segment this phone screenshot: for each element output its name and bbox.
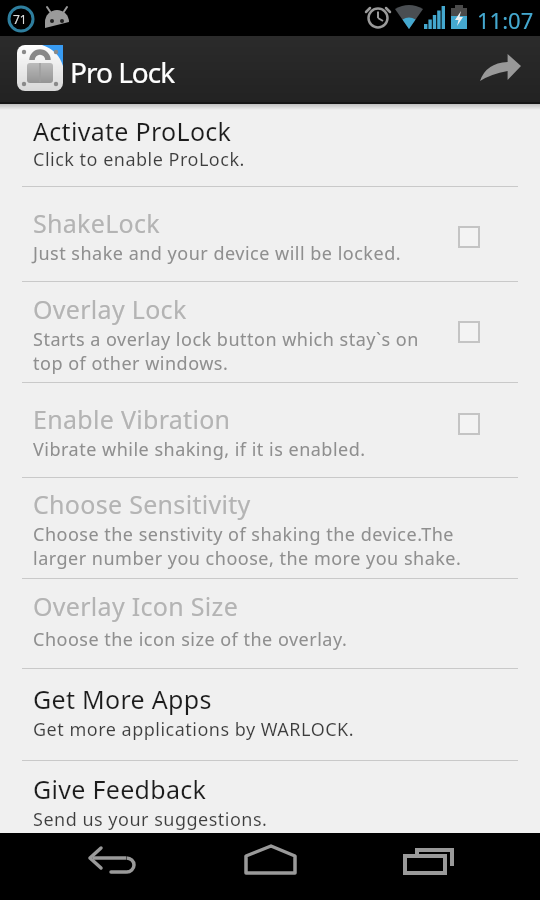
button[interactable] [398, 843, 458, 889]
staticText: Just shake and your device will be locke… [33, 241, 402, 266]
staticText: Choose the icon size of the overlay. [33, 627, 348, 652]
staticText: 11:07 [477, 5, 534, 35]
staticText: Enable Vibration [33, 402, 231, 436]
staticText: Overlay Icon Size [33, 589, 239, 623]
staticText: Get More Apps [33, 682, 212, 716]
staticText: Pro Lock [70, 53, 175, 91]
button[interactable] [0, 186, 540, 281]
button[interactable] [476, 48, 532, 88]
staticText: larger number you choose, the more you s… [33, 546, 462, 571]
button[interactable] [240, 843, 300, 889]
staticText: Starts a overlay lock button which stay`… [33, 327, 419, 352]
button[interactable] [0, 578, 540, 668]
staticText: Get more applications by WARLOCK. [33, 717, 355, 742]
staticText: Send us your suggestions. [33, 807, 268, 832]
staticText: Give Feedback [33, 772, 207, 806]
staticText: Overlay Lock [33, 292, 187, 326]
staticText: Activate ProLock [33, 114, 232, 148]
button[interactable] [0, 382, 540, 477]
staticText: 71 [13, 11, 27, 27]
button[interactable] [0, 104, 540, 186]
button[interactable] [0, 477, 540, 578]
staticText: top of other windows. [33, 351, 229, 376]
button[interactable] [0, 668, 540, 760]
staticText: Choose Sensitivity [33, 487, 251, 521]
staticText: Choose the senstivity of shaking the dev… [33, 522, 454, 547]
button[interactable] [0, 760, 540, 833]
button[interactable] [0, 281, 540, 382]
button[interactable] [85, 843, 145, 889]
staticText: Vibrate while shaking, if it is enabled. [33, 437, 366, 462]
staticText: Click to enable ProLock. [33, 147, 245, 172]
staticText: ShakeLock [33, 206, 160, 240]
